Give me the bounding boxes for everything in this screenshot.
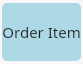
button[interactable]: Order Item bbox=[2, 3, 81, 61]
staticText: Order Item bbox=[2, 22, 81, 42]
